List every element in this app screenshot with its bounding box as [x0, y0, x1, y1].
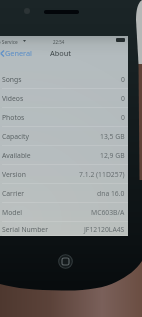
- button[interactable]: Photos: [0, 108, 128, 127]
- staticText: Carrier: [2, 189, 25, 198]
- staticText: Photos: [2, 113, 25, 122]
- staticText: Songs: [2, 75, 22, 84]
- staticText: JF12120LA4S: [84, 225, 125, 234]
- button[interactable]: Capacity: [0, 127, 128, 146]
- staticText: 0: [121, 75, 125, 84]
- button[interactable]: Model: [0, 203, 128, 222]
- staticText: Serial Number: [2, 225, 49, 234]
- staticText: Capacity: [2, 132, 30, 141]
- button[interactable]: Home: [58, 254, 73, 269]
- staticText: MC603B/A: [91, 208, 125, 217]
- button[interactable]: Available: [0, 146, 128, 165]
- staticText: No Service: [0, 39, 18, 46]
- staticText: 13,5 GB: [100, 132, 125, 141]
- button[interactable]: Serial Number: [0, 222, 128, 236]
- button[interactable]: Version: [0, 165, 128, 184]
- button[interactable]: General: [0, 48, 35, 58]
- button[interactable]: Carrier: [0, 184, 128, 203]
- staticText: 0: [121, 113, 125, 122]
- button[interactable]: Songs: [0, 70, 128, 89]
- staticText: 22:54: [53, 39, 65, 45]
- staticText: Model: [2, 208, 23, 217]
- staticText: Available: [2, 151, 31, 160]
- button[interactable]: Videos: [0, 89, 128, 108]
- staticText: 0: [121, 94, 125, 103]
- staticText: dna 16.0: [97, 189, 125, 198]
- staticText: 12,9 GB: [100, 151, 125, 160]
- staticText: Videos: [2, 94, 24, 103]
- staticText: 7.1.2 (11D257): [79, 170, 125, 179]
- staticText: About: [50, 48, 72, 58]
- staticText: Version: [2, 170, 26, 179]
- staticText: General: [5, 48, 32, 58]
